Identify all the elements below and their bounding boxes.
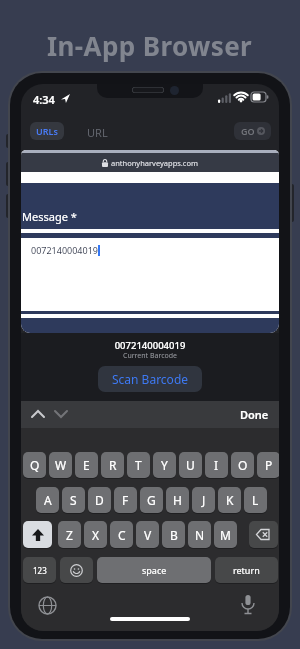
button[interactable]: Done xyxy=(240,407,269,422)
button[interactable]: C xyxy=(110,521,133,548)
staticText: H xyxy=(173,492,182,508)
staticText: Z xyxy=(66,527,73,543)
button[interactable]: I xyxy=(205,452,228,478)
staticText: K xyxy=(226,492,234,508)
staticText: return xyxy=(233,564,260,576)
button[interactable] xyxy=(54,410,68,418)
button[interactable]: F xyxy=(114,487,137,513)
staticText: Done xyxy=(240,407,269,422)
button[interactable]: 123 xyxy=(23,557,56,583)
button[interactable] xyxy=(249,521,278,548)
staticText: URLs xyxy=(36,125,58,137)
staticText: Message * xyxy=(22,209,77,224)
staticText: I xyxy=(214,457,219,473)
staticText: U xyxy=(186,457,195,473)
staticText: 123 xyxy=(33,565,47,576)
button[interactable]: A xyxy=(36,487,59,513)
button[interactable] xyxy=(23,521,52,548)
staticText: O xyxy=(238,457,248,473)
staticText: Y xyxy=(161,457,168,473)
button[interactable]: O xyxy=(231,452,254,478)
staticText: 0072140004019 xyxy=(31,244,98,256)
button[interactable]: P xyxy=(257,452,279,478)
staticText: S xyxy=(70,492,77,508)
staticText: Q xyxy=(30,457,40,473)
staticText: V xyxy=(144,527,152,543)
button[interactable]: X xyxy=(84,521,107,548)
button[interactable]: D xyxy=(88,487,111,513)
button[interactable]: Y xyxy=(153,452,176,478)
button[interactable] xyxy=(38,596,57,615)
button[interactable]: B xyxy=(162,521,185,548)
button[interactable]: R xyxy=(101,452,124,478)
button[interactable]: K xyxy=(218,487,241,513)
staticText: J xyxy=(202,492,206,508)
staticText: T xyxy=(135,457,142,473)
staticText: N xyxy=(195,527,205,543)
staticText: X xyxy=(92,527,100,543)
staticText: 4:34 xyxy=(33,92,55,107)
button[interactable]: J xyxy=(192,487,215,513)
button[interactable]: URLs xyxy=(30,122,64,140)
button[interactable]: L xyxy=(244,487,267,513)
staticText: C xyxy=(118,527,126,543)
staticText: F xyxy=(122,492,129,508)
button[interactable]: G xyxy=(140,487,163,513)
button[interactable]: H xyxy=(166,487,189,513)
staticText: E xyxy=(83,457,90,473)
staticText: space xyxy=(142,564,167,576)
button[interactable]: space xyxy=(97,557,211,583)
button[interactable]: Z xyxy=(58,521,81,548)
staticText: L xyxy=(252,492,259,508)
button[interactable]: N xyxy=(188,521,211,548)
button[interactable]: Q xyxy=(23,452,46,478)
staticText: R xyxy=(109,457,117,473)
staticText: anthonyharveyapps.com xyxy=(111,158,199,168)
staticText: 0072140004019 xyxy=(21,339,279,352)
button[interactable]: GO xyxy=(234,122,271,140)
button[interactable] xyxy=(241,595,255,616)
staticText: Current Barcode xyxy=(21,351,279,361)
button[interactable]: E xyxy=(75,452,98,478)
button[interactable]: T xyxy=(127,452,150,478)
staticText: URL xyxy=(87,125,108,140)
staticText: In-App Browser xyxy=(47,28,253,63)
button[interactable] xyxy=(31,410,45,418)
button[interactable]: S xyxy=(62,487,85,513)
staticText: Scan Barcode xyxy=(112,371,189,387)
staticText: G xyxy=(147,492,156,508)
button[interactable]: V xyxy=(136,521,159,548)
button[interactable]: W xyxy=(49,452,72,478)
button[interactable] xyxy=(60,557,93,583)
staticText: D xyxy=(95,492,104,508)
button[interactable]: M xyxy=(214,521,237,548)
staticText: W xyxy=(55,457,67,473)
button[interactable]: return xyxy=(215,557,278,583)
button[interactable]: U xyxy=(179,452,202,478)
staticText: GO xyxy=(241,125,255,137)
staticText: P xyxy=(265,457,273,473)
staticText: B xyxy=(170,527,178,543)
staticText: A xyxy=(44,492,52,508)
button[interactable]: Scan Barcode xyxy=(98,366,202,392)
staticText: M xyxy=(220,527,231,543)
